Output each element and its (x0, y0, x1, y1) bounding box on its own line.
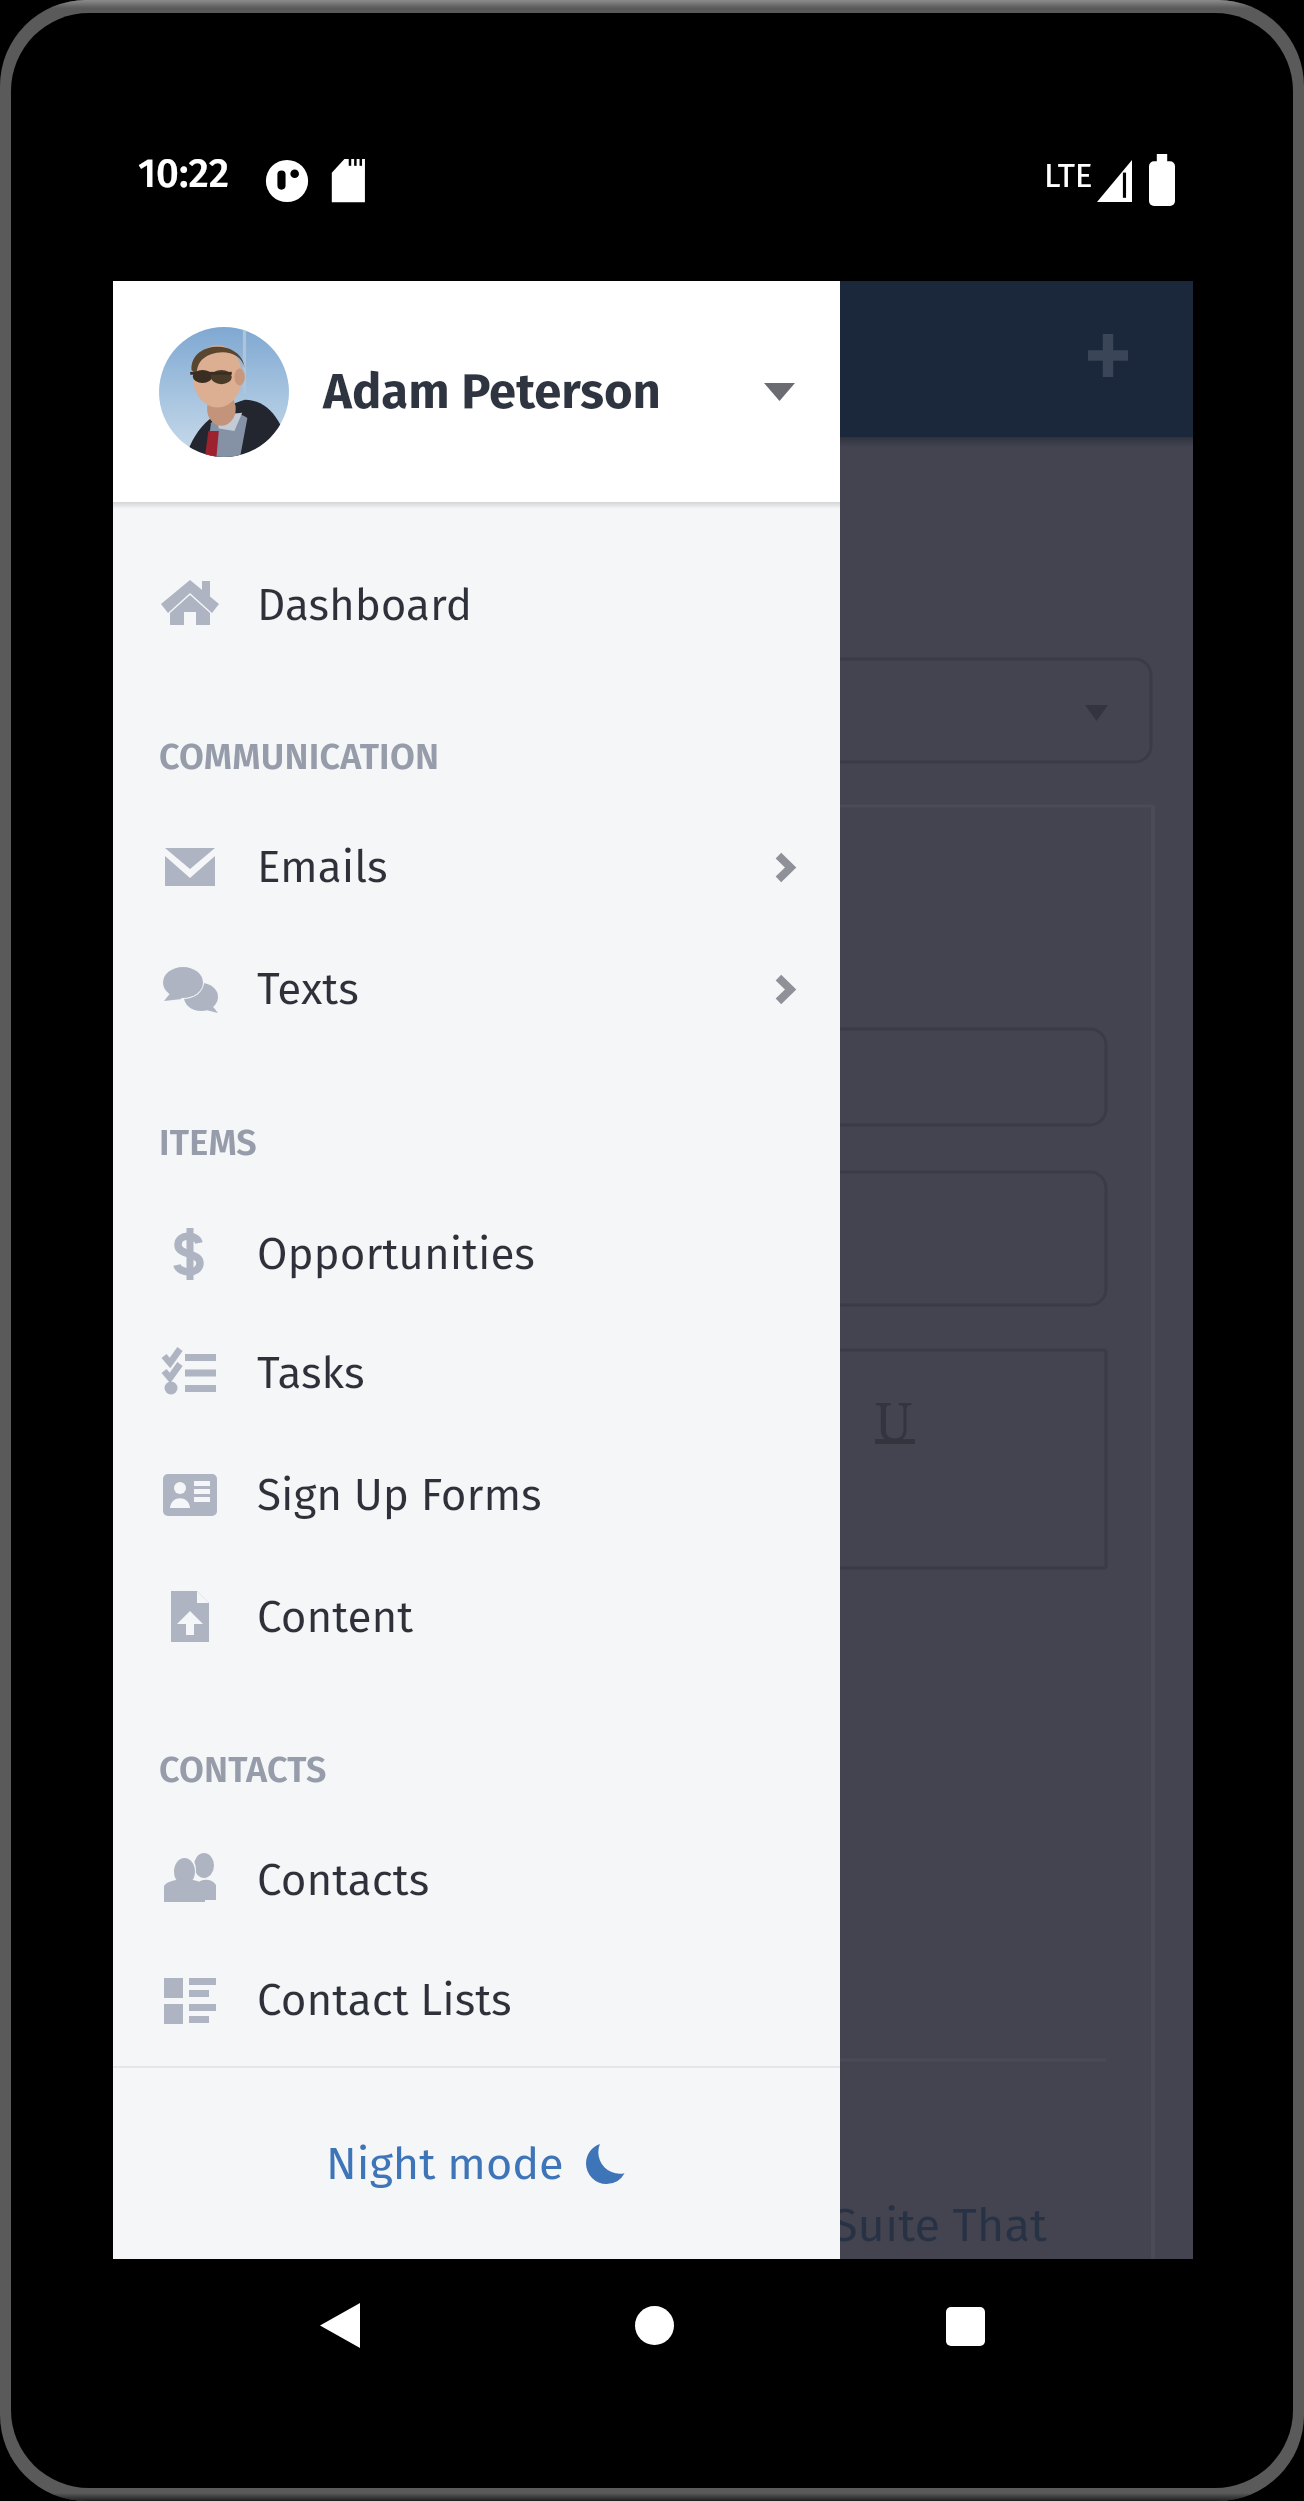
button[interactable]: Content (113, 1556, 840, 1678)
button[interactable]: Recents (946, 2307, 985, 2346)
staticText: 10:22 (138, 150, 230, 198)
staticText: Contacts (257, 1854, 430, 1907)
staticText: Night mode (326, 2137, 564, 2191)
button[interactable]: Tasks (113, 1312, 840, 1434)
staticText: Contact Lists (257, 1974, 512, 2027)
staticText: Emails (257, 841, 388, 894)
button[interactable]: Texts (113, 928, 840, 1050)
button[interactable]: Adam Peterson (113, 281, 840, 502)
button[interactable]: Contact Lists (113, 1939, 840, 2061)
button[interactable]: Sign Up Forms (113, 1434, 840, 1556)
staticText: ITEMS (159, 1121, 257, 1164)
button[interactable]: Dashboard (113, 544, 840, 666)
staticText: Tasks (257, 1347, 365, 1400)
button[interactable]: Opportunities (113, 1193, 840, 1315)
staticText: LTE (1044, 156, 1093, 196)
staticText: U (875, 1385, 913, 1456)
staticText: Texts (257, 963, 359, 1016)
staticText: Adam Peterson (323, 362, 661, 421)
staticText: Sign Up Forms (257, 1469, 542, 1522)
button[interactable]: Add (1088, 334, 1128, 377)
button[interactable]: Home (635, 2306, 674, 2345)
button[interactable]: Emails (113, 806, 840, 928)
staticText: Dashboard (257, 579, 473, 632)
staticText: COMMUNICATION (159, 735, 440, 778)
staticText: Opportunities (257, 1228, 535, 1281)
button[interactable]: Contacts (113, 1819, 840, 1941)
button[interactable]: Night mode (113, 2068, 840, 2259)
button[interactable]: Back (320, 2303, 360, 2348)
staticText: Content (257, 1591, 414, 1644)
staticText: Suite That (840, 2197, 1047, 2253)
staticText: CONTACTS (159, 1748, 327, 1791)
